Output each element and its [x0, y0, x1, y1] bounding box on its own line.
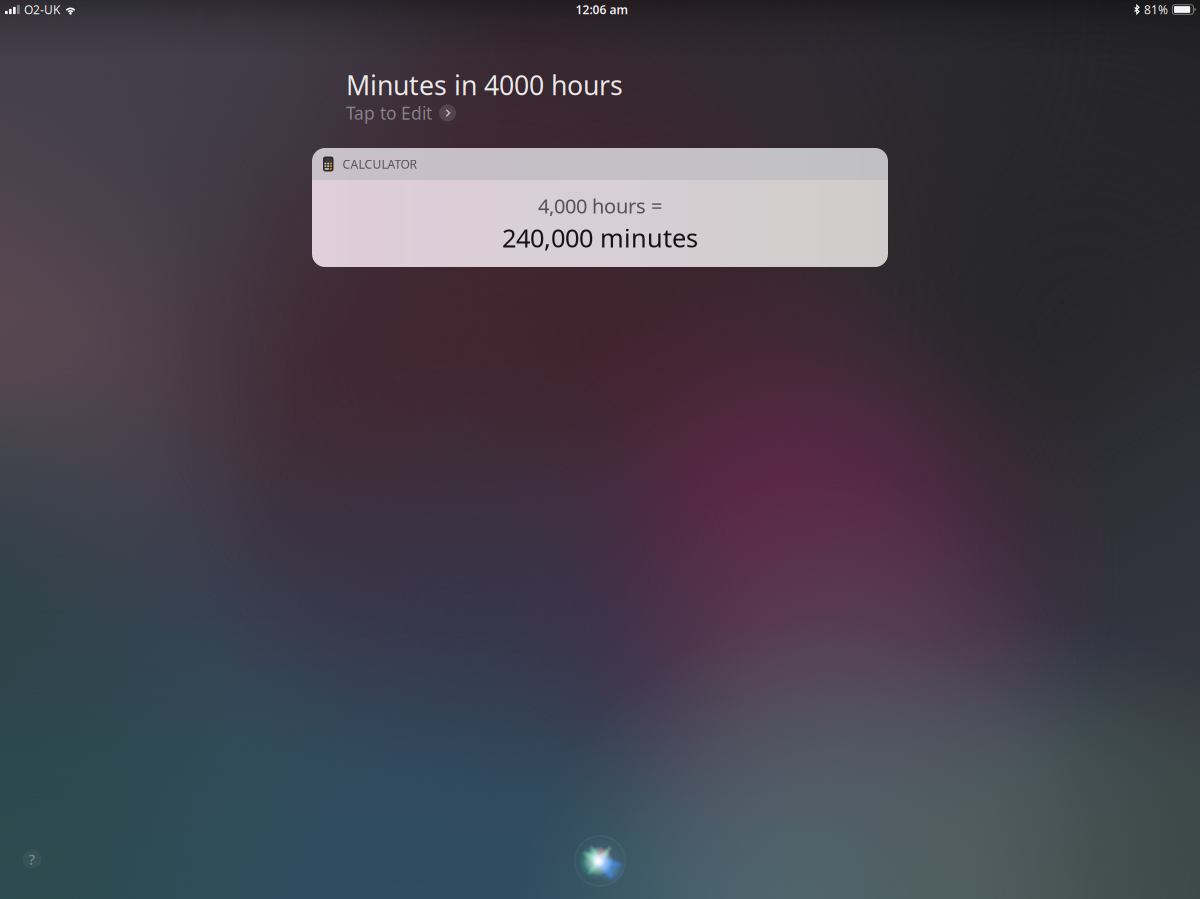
button[interactable]: Tap to Edit — [346, 103, 456, 123]
staticText: 12:06 am — [575, 1, 628, 17]
staticText: 4,000 hours = — [538, 192, 662, 219]
staticText: Minutes in 4000 hours — [346, 67, 623, 103]
staticText: Tap to Edit — [346, 101, 432, 124]
staticText: 81% — [1144, 1, 1168, 17]
staticText: CALCULATOR — [342, 156, 416, 172]
button[interactable]: Siri — [571, 832, 629, 890]
staticText: 240,000 minutes — [502, 221, 698, 255]
button[interactable]: Siri help — [20, 847, 44, 871]
staticText: ? — [28, 849, 35, 869]
button[interactable]: CALCULATOR — [312, 148, 888, 267]
staticText: O2-UK — [24, 1, 60, 17]
